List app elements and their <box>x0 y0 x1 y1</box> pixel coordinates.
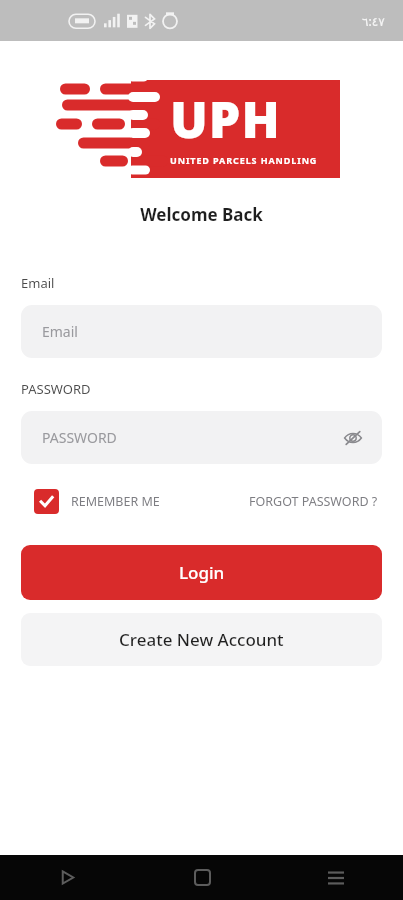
staticText: UNITED PARCELS HANDLING <box>170 154 318 166</box>
button[interactable]: Show password <box>338 423 368 453</box>
button[interactable]: Home <box>135 855 269 900</box>
staticText: Email <box>42 322 78 341</box>
button[interactable]: Login <box>21 545 382 600</box>
button[interactable]: FORGOT PASSWORD ? <box>245 489 382 514</box>
staticText: REMEMBER ME <box>71 493 160 510</box>
button[interactable]: Recent apps <box>269 855 403 900</box>
button[interactable]: REMEMBER ME <box>21 489 164 514</box>
staticText: Create New Account <box>119 628 284 651</box>
staticText: FORGOT PASSWORD ? <box>249 493 378 510</box>
staticText: Welcome Back <box>0 203 403 226</box>
staticText: UPH <box>170 85 281 153</box>
button[interactable]: PASSWORD <box>21 411 382 464</box>
button[interactable]: Email <box>21 305 382 358</box>
staticText: ٦:٤٧ <box>362 13 385 29</box>
button[interactable]: Create New Account <box>21 613 382 666</box>
staticText: Email <box>21 274 55 292</box>
button[interactable]: Back <box>0 855 135 900</box>
staticText: PASSWORD <box>21 380 91 398</box>
staticText: PASSWORD <box>42 428 117 447</box>
staticText: Login <box>179 561 225 584</box>
